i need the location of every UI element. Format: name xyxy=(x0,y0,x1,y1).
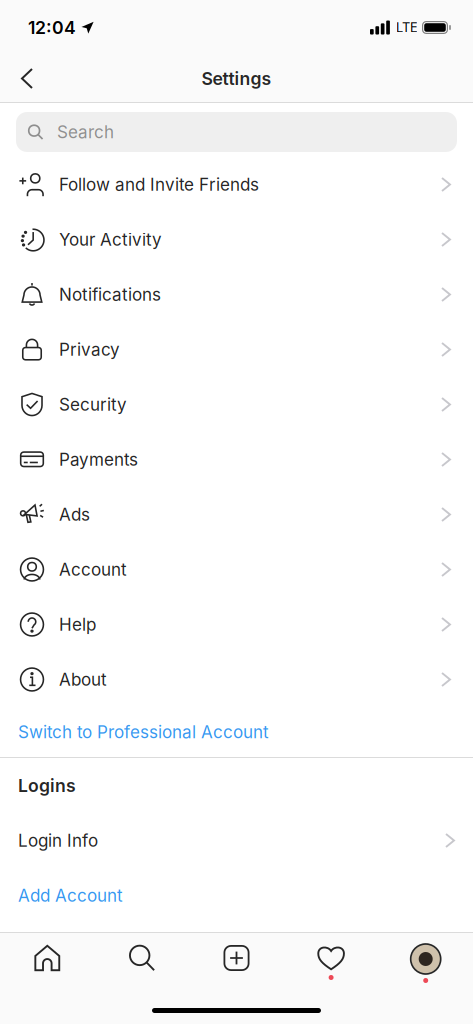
button[interactable]: About xyxy=(0,652,473,707)
button[interactable]: Home xyxy=(0,933,95,991)
button[interactable]: Follow and Invite Friends xyxy=(0,157,473,212)
staticText: Privacy xyxy=(59,339,120,360)
button[interactable]: Privacy xyxy=(0,322,473,377)
button[interactable]: New Post xyxy=(189,933,284,991)
staticText: Account xyxy=(59,559,127,580)
staticText: Your Activity xyxy=(59,229,162,250)
staticText: Security xyxy=(59,394,127,415)
button[interactable]: Security xyxy=(0,377,473,432)
staticText: Settings xyxy=(201,68,271,89)
button[interactable]: Ads xyxy=(0,487,473,542)
staticText: Help xyxy=(59,614,96,635)
staticText: Switch to Professional Account xyxy=(18,722,269,742)
button[interactable]: Notifications xyxy=(0,267,473,322)
staticText: Add Account xyxy=(18,885,123,906)
button[interactable]: Account xyxy=(0,542,473,597)
button[interactable]: Search xyxy=(0,103,473,157)
button[interactable]: Help xyxy=(0,597,473,652)
staticText: Logins xyxy=(18,775,76,796)
button[interactable]: Payments xyxy=(0,432,473,487)
button[interactable]: Add Account xyxy=(0,868,473,923)
staticText: Login Info xyxy=(18,830,98,851)
staticText: LTE xyxy=(396,20,418,35)
button[interactable]: Activity xyxy=(284,933,378,991)
staticText: Ads xyxy=(59,504,90,525)
staticText: 12:04 xyxy=(28,17,76,38)
staticText: Follow and Invite Friends xyxy=(59,174,259,195)
button[interactable]: Search xyxy=(95,933,189,991)
button[interactable]: Your Activity xyxy=(0,212,473,267)
button[interactable]: Profile xyxy=(378,933,473,991)
staticText: Search xyxy=(57,122,114,142)
staticText: Payments xyxy=(59,449,138,470)
button[interactable]: Switch to Professional Account xyxy=(0,707,473,757)
staticText: Notifications xyxy=(59,284,161,305)
button[interactable]: Login Info xyxy=(0,813,473,868)
staticText: About xyxy=(59,669,107,690)
button[interactable]: Back xyxy=(5,56,49,100)
